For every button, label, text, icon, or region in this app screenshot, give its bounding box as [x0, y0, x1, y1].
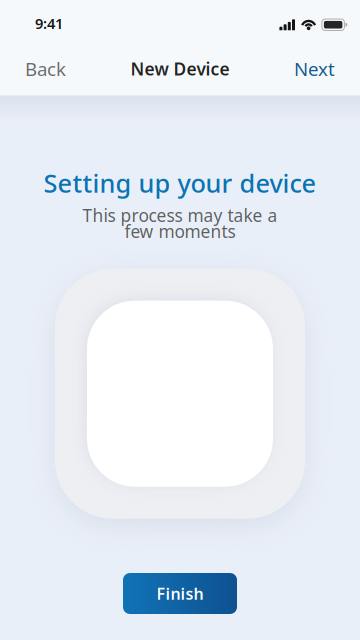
staticText: Setting up your device [43, 166, 316, 200]
staticText: few moments [124, 220, 235, 243]
button[interactable]: Back [0, 47, 78, 91]
staticText: New Device [130, 57, 229, 80]
button[interactable]: Next [282, 47, 360, 91]
staticText: Back [25, 56, 66, 81]
button[interactable]: Finish [123, 573, 237, 614]
staticText: This process may take a [82, 204, 277, 227]
staticText: Finish [156, 583, 203, 604]
staticText: Next [294, 56, 335, 81]
staticText: 9:41 [35, 13, 63, 33]
